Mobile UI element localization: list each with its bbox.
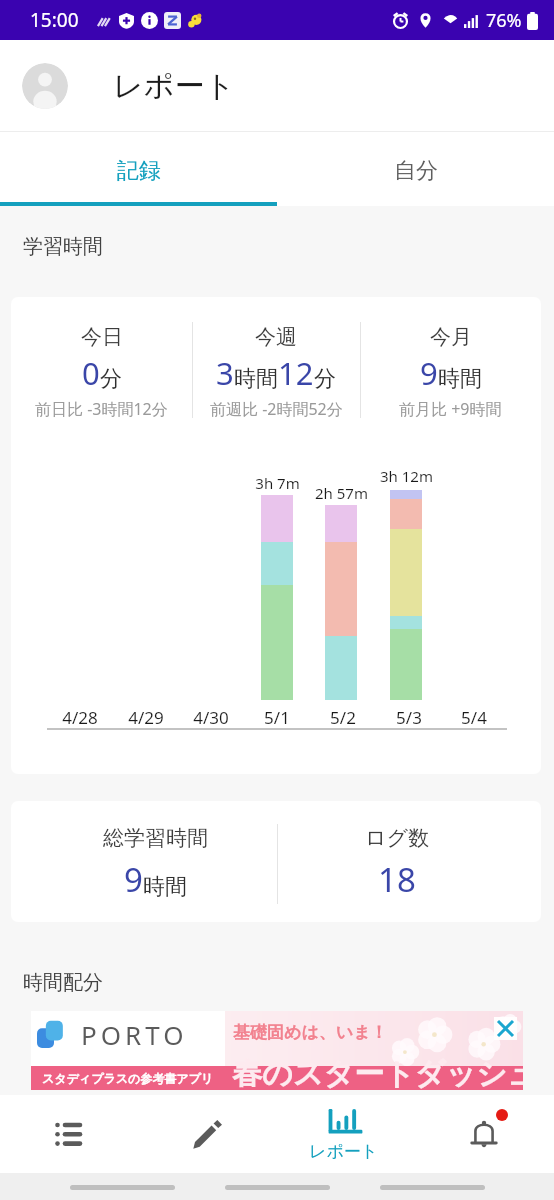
staticText: 9 [420,352,438,394]
staticText: 時間 [143,873,187,901]
button[interactable]: Record study [138,1095,276,1173]
staticText: 春のスタートダッシュ [232,1055,523,1090]
staticText: 自分 [394,157,438,185]
staticText: 15:00 [30,7,79,33]
button[interactable]: 自分 [277,132,554,206]
staticText: 4/29 [128,706,164,729]
staticText: 今日 [81,324,123,350]
staticText: 3h 7m [255,473,300,493]
button[interactable]: Account [22,63,68,109]
staticText: 今月 [430,324,472,350]
staticText: 記録 [117,157,161,185]
staticText: 基礎固めは、いま！ [233,1022,388,1043]
button[interactable]: レポート [276,1095,415,1173]
button[interactable]: 記録 [0,132,277,206]
staticText: 今週 [255,324,297,350]
staticText: 76% [486,8,522,33]
staticText: レポート [309,1141,379,1162]
staticText: 分 [314,365,336,393]
staticText: 前日比 -3時間12分 [35,398,168,420]
staticText: 5/1 [264,706,290,729]
staticText: 時間配分 [23,970,103,995]
staticText: 前月比 +9時間 [399,398,502,420]
staticText: 学習時間 [23,234,103,259]
button[interactable]: PORTO [31,1011,523,1090]
staticText: 12 [278,352,314,394]
staticText: 5/4 [461,706,487,729]
staticText: 時間 [234,365,278,393]
button[interactable]: Notifications [415,1095,554,1173]
staticText: 9 [124,857,143,902]
staticText: 分 [100,365,122,393]
staticText: 前週比 -2時間52分 [210,398,343,420]
staticText: 3 [216,352,234,394]
button[interactable]: Timeline [0,1095,138,1173]
button[interactable]: Close ad [494,1017,517,1040]
staticText: 4/30 [193,706,229,729]
staticText: 時間 [438,365,482,393]
staticText: ログ数 [365,825,429,851]
staticText: 4/28 [62,706,98,729]
staticText: 5/3 [396,706,422,729]
staticText: 総学習時間 [103,825,208,851]
staticText: 2h 57m [315,483,368,503]
staticText: PORTO [81,1017,188,1052]
staticText: スタディプラスの参考書アプリ [42,1071,214,1086]
staticText: 3h 12m [380,466,433,486]
staticText: 18 [378,857,416,902]
staticText: レポート [113,67,236,105]
staticText: 0 [82,352,100,394]
staticText: 5/2 [330,706,356,729]
